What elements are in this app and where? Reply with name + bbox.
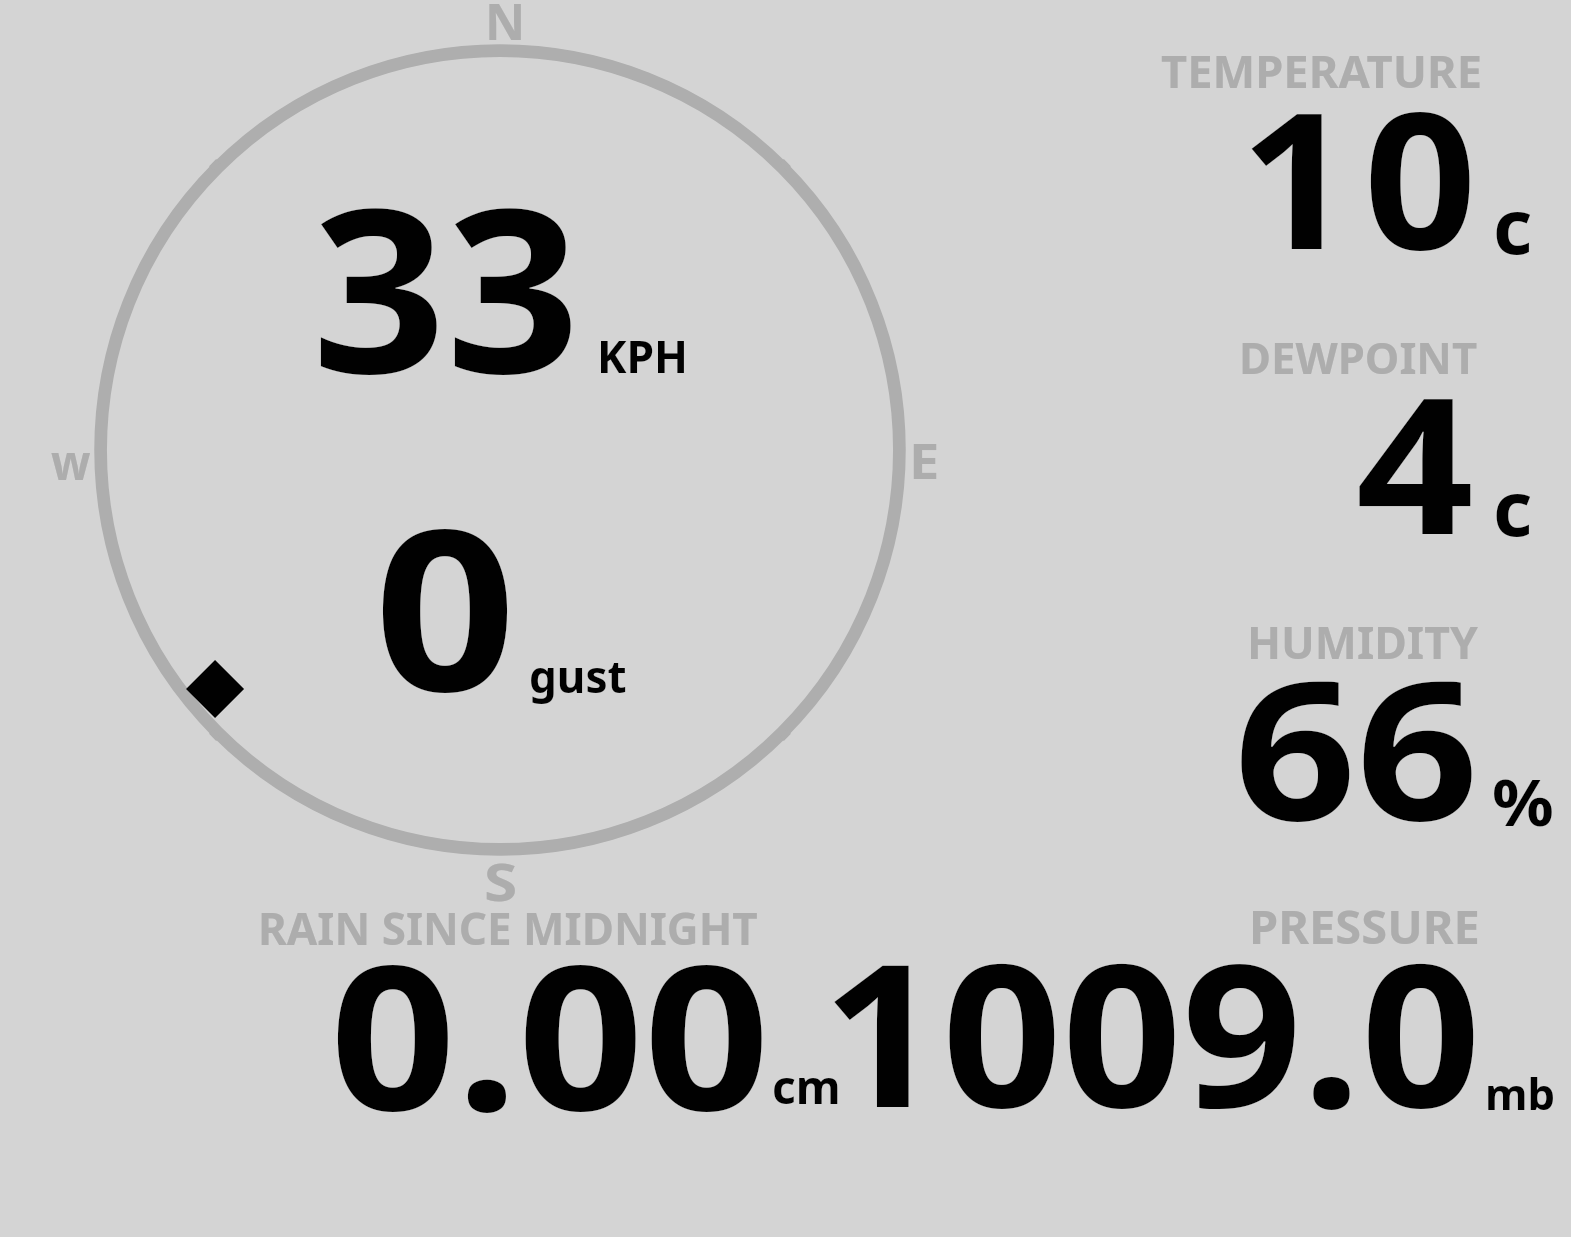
button[interactable]: Rain since midnight: [250, 900, 850, 1120]
staticText: 10: [1240, 47, 1489, 304]
button[interactable]: Humidity: [1140, 615, 1570, 830]
staticText: S: [484, 845, 518, 916]
staticText: KPH: [597, 326, 689, 386]
staticText: PRESSURE: [1249, 894, 1480, 958]
staticText: DEWPOINT: [1239, 327, 1478, 387]
staticText: TEMPERATURE: [1161, 40, 1483, 102]
button[interactable]: Temperature: [1140, 45, 1560, 260]
staticText: E: [909, 427, 940, 493]
staticText: 1009.0: [822, 896, 1481, 1164]
staticText: mb: [1485, 1063, 1556, 1122]
button[interactable]: Dewpoint: [1140, 330, 1560, 545]
staticText: 4: [1356, 332, 1475, 589]
staticText: 33: [312, 131, 580, 439]
staticText: 0.00: [330, 897, 770, 1168]
button[interactable]: Pressure: [860, 900, 1560, 1120]
staticText: N: [485, 0, 526, 54]
staticText: cm: [772, 1055, 841, 1118]
staticText: 0: [374, 453, 517, 757]
staticText: c: [1493, 455, 1533, 559]
staticText: gust: [529, 646, 627, 706]
staticText: c: [1493, 173, 1533, 277]
staticText: w: [51, 429, 91, 494]
staticText: %: [1492, 758, 1554, 845]
staticText: 66: [1234, 615, 1479, 877]
button[interactable]: Wind speed and direction: [95, 45, 905, 855]
staticText: RAIN SINCE MIDNIGHT: [258, 898, 758, 958]
staticText: HUMIDITY: [1247, 611, 1478, 672]
